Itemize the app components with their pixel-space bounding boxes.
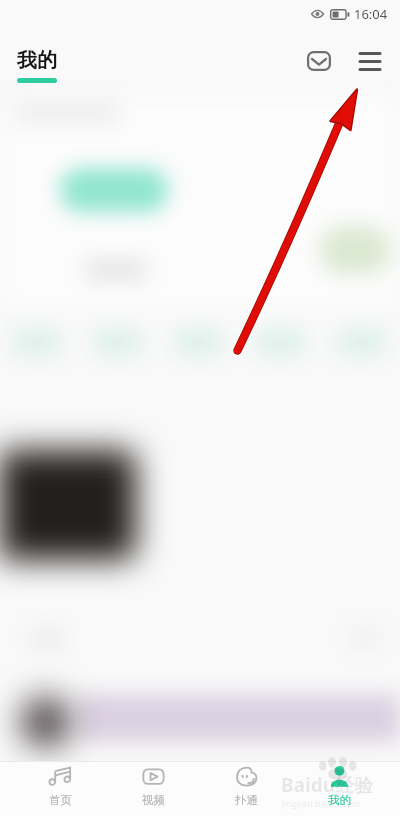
staticText: 我的: [328, 793, 351, 806]
button[interactable]: Downloads: [304, 48, 334, 74]
staticText: 视频: [142, 793, 165, 806]
staticText: 我的: [17, 48, 57, 73]
button[interactable]: 我的: [293, 762, 386, 816]
button[interactable]: 首页: [14, 762, 107, 816]
staticText: 首页: [49, 793, 72, 806]
staticText: 16:04: [354, 5, 388, 23]
staticText: 扑通: [235, 793, 258, 806]
button[interactable]: 扑通: [200, 762, 293, 816]
button[interactable]: 视频: [107, 762, 200, 816]
staticText: Baidu经验: [281, 772, 374, 798]
staticText: jingyan.baidu.com: [281, 797, 361, 809]
button[interactable]: Menu: [358, 49, 382, 73]
